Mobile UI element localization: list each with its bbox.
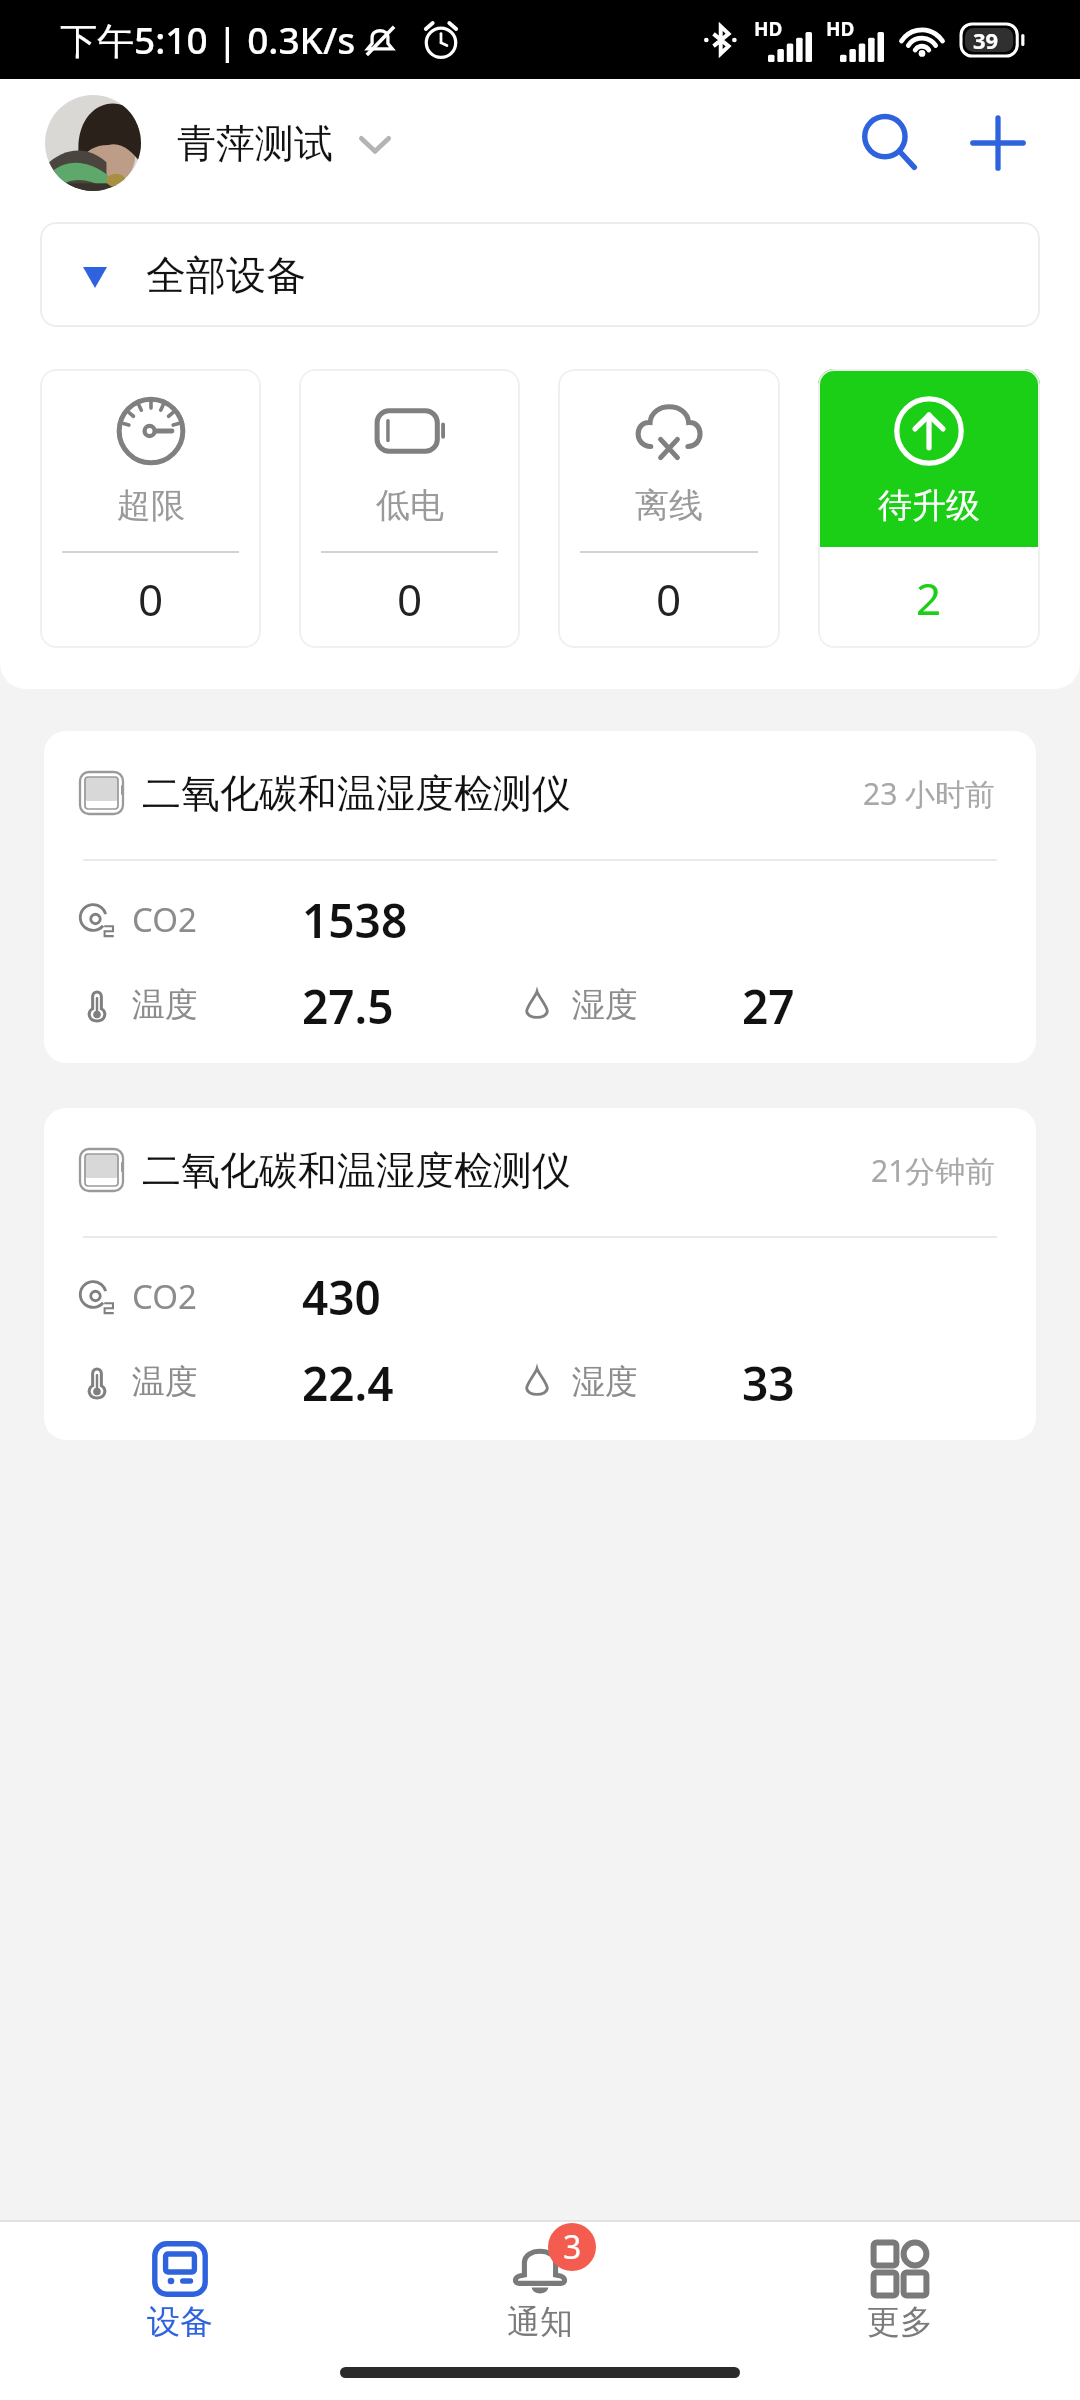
staticText: 1538 bbox=[302, 889, 408, 949]
staticText: 22.4 bbox=[302, 1352, 394, 1412]
button[interactable]: 二氧化碳和温湿度检测仪 bbox=[44, 731, 1036, 1063]
staticText: 设备 bbox=[147, 2301, 213, 2343]
staticText: 2 bbox=[916, 568, 942, 628]
staticText: 33 bbox=[742, 1352, 795, 1412]
staticText: 湿度 bbox=[572, 1361, 638, 1403]
button[interactable]: Search bbox=[842, 95, 938, 191]
button[interactable]: 3 bbox=[360, 2222, 720, 2400]
staticText: 青萍测试 bbox=[177, 119, 333, 168]
staticText: 23 小时前 bbox=[863, 773, 996, 814]
staticText: 待升级 bbox=[878, 484, 980, 527]
staticText: 温度 bbox=[132, 984, 198, 1026]
staticText: HD bbox=[754, 16, 783, 42]
button[interactable]: 超限 bbox=[40, 369, 261, 648]
button[interactable]: Add bbox=[950, 95, 1046, 191]
staticText: 二氧化碳和温湿度检测仪 bbox=[142, 769, 571, 818]
staticText: CO2 bbox=[132, 897, 197, 942]
button[interactable]: 设备 bbox=[0, 2222, 360, 2400]
staticText: 0 bbox=[138, 569, 164, 629]
staticText: 离线 bbox=[635, 484, 703, 527]
staticText: 超限 bbox=[117, 484, 185, 527]
button[interactable]: 低电 bbox=[299, 369, 520, 648]
button[interactable]: 离线 bbox=[558, 369, 780, 648]
staticText: 3 bbox=[563, 2225, 582, 2269]
button[interactable]: 二氧化碳和温湿度检测仪 bbox=[44, 1108, 1036, 1440]
staticText: 430 bbox=[302, 1266, 381, 1326]
button[interactable]: 待升级 bbox=[818, 369, 1040, 648]
staticText: 全部设备 bbox=[146, 250, 306, 300]
staticText: 下午5:10 | 0.3K/s bbox=[60, 14, 356, 65]
staticText: 温度 bbox=[132, 1361, 198, 1403]
staticText: 27 bbox=[742, 975, 795, 1035]
staticText: CO2 bbox=[132, 1274, 197, 1319]
staticText: 二氧化碳和温湿度检测仪 bbox=[142, 1146, 571, 1195]
button[interactable]: 青萍测试 bbox=[177, 119, 395, 168]
staticText: 低电 bbox=[376, 484, 444, 527]
button[interactable]: Profile bbox=[45, 95, 141, 191]
staticText: 湿度 bbox=[572, 984, 638, 1026]
staticText: 0 bbox=[656, 569, 682, 629]
button[interactable]: 更多 bbox=[720, 2222, 1080, 2400]
staticText: HD bbox=[826, 16, 855, 42]
staticText: 27.5 bbox=[302, 975, 394, 1035]
staticText: 通知 bbox=[507, 2301, 573, 2343]
staticText: 21分钟前 bbox=[871, 1150, 996, 1191]
staticText: 0 bbox=[397, 569, 423, 629]
button[interactable]: 全部设备 bbox=[40, 222, 1040, 327]
staticText: 39 bbox=[973, 25, 999, 55]
staticText: 更多 bbox=[867, 2301, 933, 2343]
